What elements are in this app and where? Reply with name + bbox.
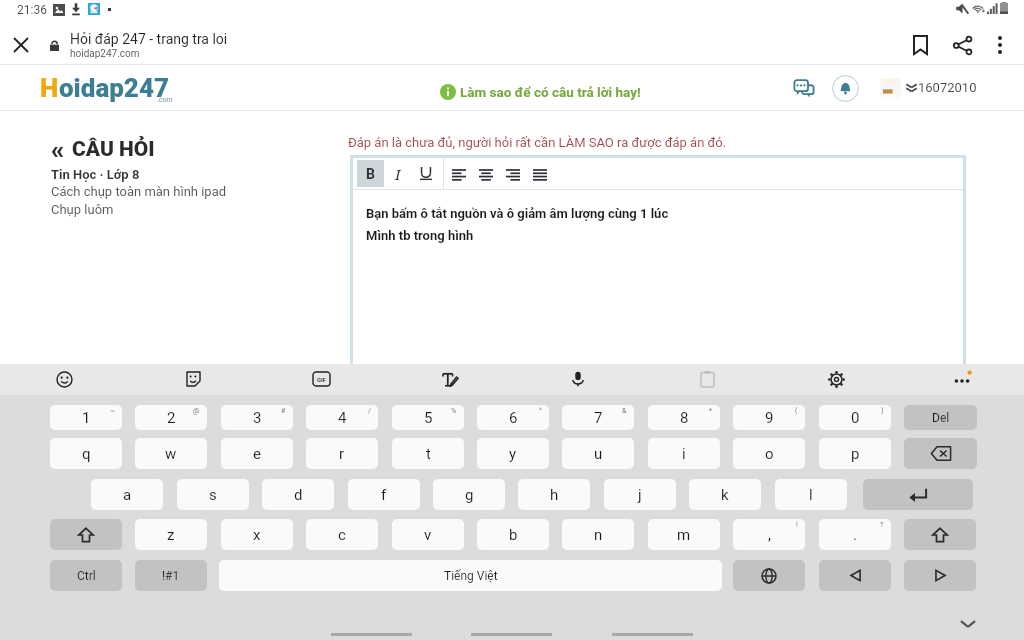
- button[interactable]: y: [477, 438, 549, 469]
- button[interactable]: r: [306, 438, 378, 469]
- staticText: u: [594, 445, 603, 463]
- staticText: /: [368, 407, 371, 415]
- button[interactable]: B: [357, 160, 384, 187]
- button[interactable]: Close: [7, 31, 35, 59]
- button[interactable]: v: [392, 519, 464, 550]
- button[interactable]: Sticker: [178, 364, 208, 394]
- button[interactable]: I: [384, 160, 411, 187]
- button[interactable]: m: [648, 519, 720, 550]
- button[interactable]: Underline: [412, 160, 439, 187]
- staticText: o: [765, 445, 774, 463]
- button[interactable]: .: [819, 519, 891, 550]
- staticText: Đáp án là chưa đủ, người hỏi rất cần LÀM…: [348, 135, 727, 150]
- button[interactable]: 9: [733, 405, 805, 430]
- button[interactable]: f: [348, 479, 420, 510]
- button[interactable]: left: [819, 560, 891, 591]
- staticText: %: [451, 407, 457, 415]
- button[interactable]: Messages: [793, 77, 815, 99]
- button[interactable]: 7: [562, 405, 634, 430]
- button[interactable]: l: [775, 479, 847, 510]
- button[interactable]: Voice input: [563, 364, 593, 394]
- button[interactable]: Emoji: [49, 364, 79, 394]
- button[interactable]: g: [433, 479, 505, 510]
- button[interactable]: s: [177, 479, 249, 510]
- button[interactable]: backspace: [904, 438, 977, 469]
- button[interactable]: Share: [943, 26, 981, 64]
- button[interactable]: More: [947, 364, 977, 394]
- button[interactable]: Settings: [821, 364, 851, 394]
- button[interactable]: enter: [863, 479, 973, 510]
- button[interactable]: Align: [527, 161, 553, 187]
- staticText: z: [167, 526, 175, 544]
- button[interactable]: d: [262, 479, 334, 510]
- button[interactable]: 3: [221, 405, 293, 430]
- button[interactable]: shift: [50, 519, 122, 550]
- button[interactable]: a: [91, 479, 163, 510]
- button[interactable]: 1: [50, 405, 122, 430]
- staticText: 7: [594, 409, 603, 427]
- button[interactable]: x: [221, 519, 293, 550]
- button[interactable]: u: [562, 438, 634, 469]
- button[interactable]: Ctrl: [50, 560, 122, 591]
- button[interactable]: Align: [500, 161, 526, 187]
- button[interactable]: right: [904, 560, 976, 591]
- staticText: B: [366, 166, 375, 182]
- staticText: m: [677, 526, 691, 544]
- staticText: i: [682, 445, 686, 463]
- button[interactable]: 6: [477, 405, 549, 430]
- staticText: GIF: [317, 376, 327, 383]
- button[interactable]: n: [562, 519, 634, 550]
- button[interactable]: Profile: [880, 78, 901, 99]
- staticText: 2: [167, 409, 176, 427]
- button[interactable]: q: [50, 438, 122, 469]
- button[interactable]: c: [306, 519, 378, 550]
- staticText: ): [881, 407, 884, 415]
- staticText: I: [395, 164, 401, 184]
- staticText: e: [253, 445, 261, 463]
- staticText: a: [123, 486, 132, 504]
- button[interactable]: p: [819, 438, 891, 469]
- button[interactable]: w: [135, 438, 207, 469]
- button[interactable]: Del: [904, 405, 977, 430]
- staticText: Del: [932, 411, 950, 425]
- staticText: Tiếng Việt: [444, 569, 498, 583]
- button[interactable]: 0: [819, 405, 891, 430]
- button[interactable]: i: [648, 438, 720, 469]
- button[interactable]: h: [518, 479, 590, 510]
- button[interactable]: z: [135, 519, 207, 550]
- button[interactable]: globe: [733, 560, 805, 591]
- button[interactable]: k: [689, 479, 761, 510]
- button[interactable]: Hide keyboard: [953, 609, 983, 639]
- staticText: Ctrl: [77, 569, 96, 583]
- button[interactable]: e: [221, 438, 293, 469]
- button[interactable]: Clipboard: [692, 364, 722, 394]
- button[interactable]: shift: [904, 519, 976, 550]
- staticText: CÂU HỎI: [72, 137, 155, 162]
- button[interactable]: !#1: [135, 560, 207, 591]
- button[interactable]: t: [392, 438, 464, 469]
- button[interactable]: o: [733, 438, 805, 469]
- button[interactable]: 8: [648, 405, 720, 430]
- button[interactable]: More options: [981, 26, 1019, 64]
- button[interactable]: 4: [306, 405, 378, 430]
- button[interactable]: Tiếng Việt: [219, 560, 722, 591]
- staticText: Hỏi đáp 247 - trang tra loi: [70, 31, 228, 47]
- button[interactable]: b: [477, 519, 549, 550]
- button[interactable]: 5: [392, 405, 464, 430]
- staticText: Cách chụp toàn màn hình ipad: [51, 184, 227, 199]
- staticText: 1: [82, 409, 91, 427]
- button[interactable]: ,: [733, 519, 805, 550]
- staticText: Chụp luôm: [51, 202, 114, 217]
- button[interactable]: Align: [446, 161, 472, 187]
- button[interactable]: GIF: [306, 364, 336, 394]
- staticText: 0: [851, 409, 860, 427]
- button[interactable]: Bookmark: [898, 26, 943, 64]
- staticText: *: [709, 407, 713, 415]
- button[interactable]: j: [604, 479, 676, 510]
- button[interactable]: 2: [135, 405, 207, 430]
- button[interactable]: Text edit: [435, 364, 465, 394]
- staticText: @: [193, 407, 200, 415]
- button[interactable]: Align: [473, 161, 499, 187]
- staticText: x: [253, 526, 261, 544]
- button[interactable]: Notifications: [832, 75, 859, 102]
